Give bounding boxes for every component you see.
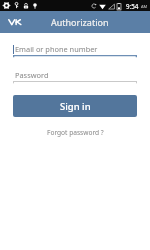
button[interactable]: Email or phone number bbox=[13, 42, 137, 58]
staticText: Forgot password ? bbox=[47, 128, 104, 137]
button[interactable]: Sign in bbox=[13, 95, 137, 117]
button[interactable]: Password bbox=[13, 68, 137, 84]
staticText: Authorization bbox=[51, 16, 109, 28]
staticText: Email or phone number bbox=[15, 44, 98, 54]
staticText: AM bbox=[141, 4, 148, 9]
staticText: Sign in bbox=[60, 100, 91, 113]
button[interactable]: VK bbox=[6, 13, 24, 31]
staticText: Password bbox=[15, 70, 49, 80]
staticText: 9:54 bbox=[126, 2, 139, 10]
button[interactable]: Forgot password ? bbox=[13, 125, 137, 139]
